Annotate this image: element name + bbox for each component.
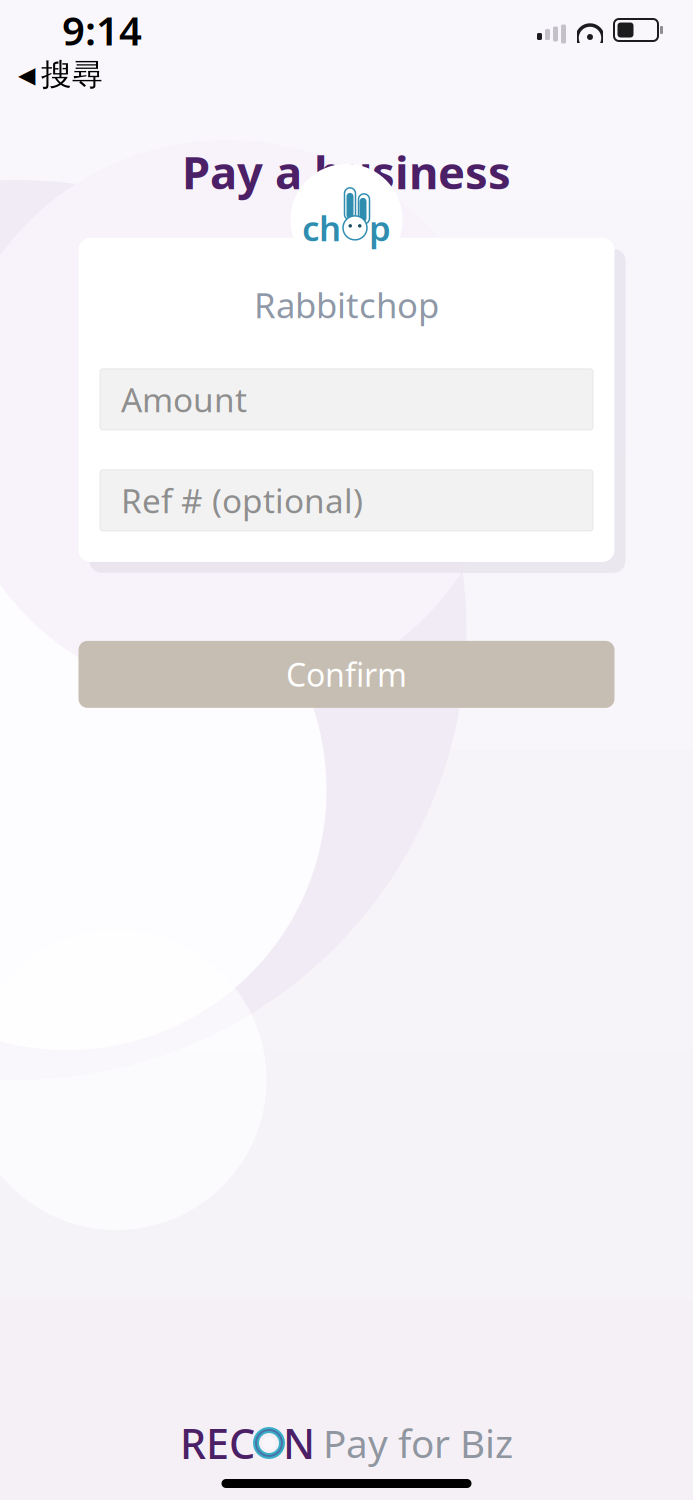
staticText: Pay for Biz [323,1417,513,1469]
button[interactable]: Confirm [78,641,614,708]
staticText: Confirm [286,653,407,696]
staticText: 搜尋 [41,56,103,94]
button[interactable]: ◀ [0,52,103,98]
staticText: Ref # (optional) [121,478,363,523]
staticText: Pay a business [182,142,511,202]
staticText: REC [180,1416,255,1470]
staticText: p [369,205,391,251]
staticText: ◀ [18,62,35,88]
staticText: Amount [121,377,247,422]
staticText: Rabbitchop [254,282,439,328]
staticText: N [283,1416,315,1470]
button[interactable]: Amount [100,369,593,430]
button[interactable]: Ref # (optional) [100,470,593,531]
staticText: ch [302,205,341,251]
staticText: 9:14 [62,3,142,56]
